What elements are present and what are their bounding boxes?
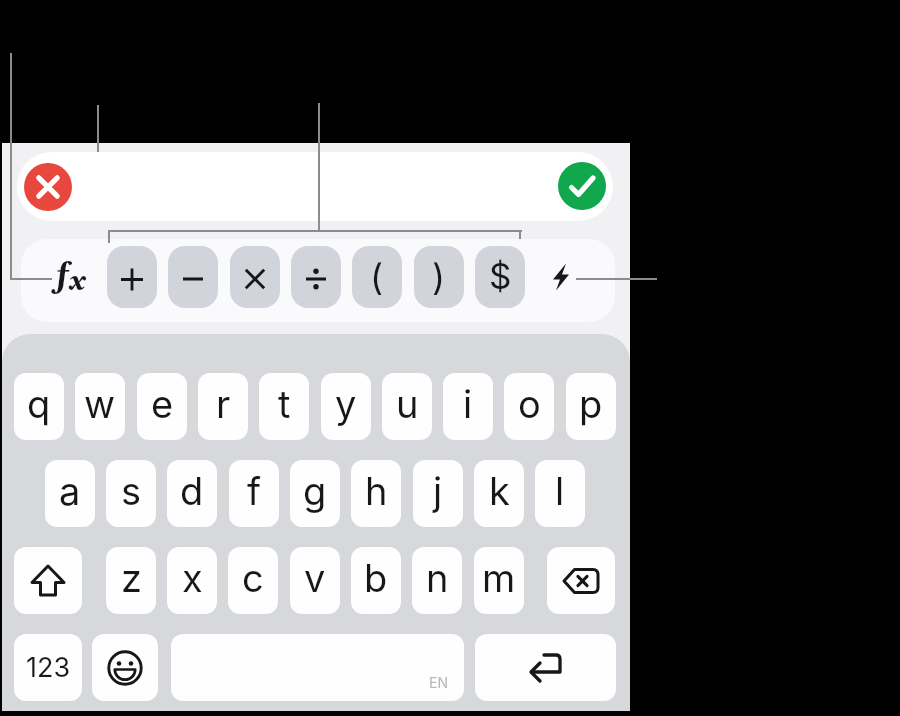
button[interactable]: EN xyxy=(171,634,464,701)
staticText: f xyxy=(247,468,262,514)
button[interactable]: f xyxy=(229,460,279,527)
staticText: r xyxy=(216,381,231,427)
button[interactable]: u xyxy=(382,373,432,440)
staticText: f xyxy=(56,255,69,298)
staticText: c xyxy=(242,555,264,601)
staticText: l xyxy=(555,468,565,514)
button[interactable] xyxy=(536,246,586,308)
button[interactable] xyxy=(14,547,82,614)
staticText: ) xyxy=(432,255,446,299)
staticText: o xyxy=(518,381,541,427)
button[interactable]: d xyxy=(167,460,217,527)
button[interactable]: $ xyxy=(475,246,525,308)
button[interactable]: n xyxy=(412,547,462,614)
button[interactable] xyxy=(92,634,158,701)
button[interactable]: ( xyxy=(352,246,402,308)
button[interactable]: j xyxy=(413,460,463,527)
button[interactable]: r xyxy=(198,373,248,440)
staticText: b xyxy=(364,555,388,601)
button[interactable]: m xyxy=(474,547,524,614)
staticText: e xyxy=(151,381,174,427)
button[interactable] xyxy=(547,547,615,614)
button[interactable] xyxy=(168,246,218,308)
staticText: d xyxy=(180,468,204,514)
button[interactable]: b xyxy=(351,547,401,614)
button[interactable]: p xyxy=(566,373,616,440)
button[interactable]: g xyxy=(290,460,340,527)
staticText: q xyxy=(27,381,51,427)
button[interactable] xyxy=(558,162,606,210)
button[interactable] xyxy=(24,163,72,211)
button[interactable]: a xyxy=(45,460,95,527)
button[interactable]: c xyxy=(228,547,278,614)
staticText: x xyxy=(182,555,203,601)
staticText: s xyxy=(121,468,142,514)
button[interactable]: z xyxy=(106,547,156,614)
staticText: p xyxy=(579,381,603,427)
button[interactable]: i xyxy=(443,373,493,440)
button[interactable] xyxy=(107,246,157,308)
staticText: $ xyxy=(489,255,512,297)
button[interactable]: o xyxy=(504,373,554,440)
button[interactable]: w xyxy=(75,373,125,440)
button[interactable]: x xyxy=(167,547,217,614)
staticText: u xyxy=(396,381,419,427)
staticText: i xyxy=(463,381,473,427)
staticText: z xyxy=(121,555,142,601)
button[interactable]: l xyxy=(535,460,585,527)
staticText: v xyxy=(304,555,326,601)
staticText: g xyxy=(303,468,327,514)
staticText: 123 xyxy=(26,651,71,684)
button[interactable]: e xyxy=(137,373,187,440)
staticText: t xyxy=(278,381,291,427)
staticText: n xyxy=(426,555,449,601)
staticText: m xyxy=(482,555,516,601)
button[interactable]: t xyxy=(259,373,309,440)
button[interactable] xyxy=(230,246,280,308)
staticText: w xyxy=(84,381,116,427)
button[interactable] xyxy=(291,246,341,308)
staticText: ( xyxy=(370,255,384,299)
staticText: h xyxy=(365,468,388,514)
staticText: EN xyxy=(429,674,448,691)
button[interactable]: h xyxy=(351,460,401,527)
button[interactable]: ) xyxy=(414,246,464,308)
button[interactable]: f xyxy=(46,246,96,308)
button[interactable]: y xyxy=(321,373,371,440)
staticText: j xyxy=(433,468,443,514)
button[interactable] xyxy=(475,634,616,701)
staticText: x xyxy=(69,263,86,300)
button[interactable]: q xyxy=(14,373,64,440)
staticText: y xyxy=(335,381,357,427)
button[interactable]: k xyxy=(474,460,524,527)
staticText: k xyxy=(489,468,510,514)
button[interactable]: s xyxy=(106,460,156,527)
button[interactable] xyxy=(17,152,613,221)
button[interactable]: 123 xyxy=(14,634,82,701)
staticText: a xyxy=(59,468,81,514)
button[interactable]: v xyxy=(290,547,340,614)
